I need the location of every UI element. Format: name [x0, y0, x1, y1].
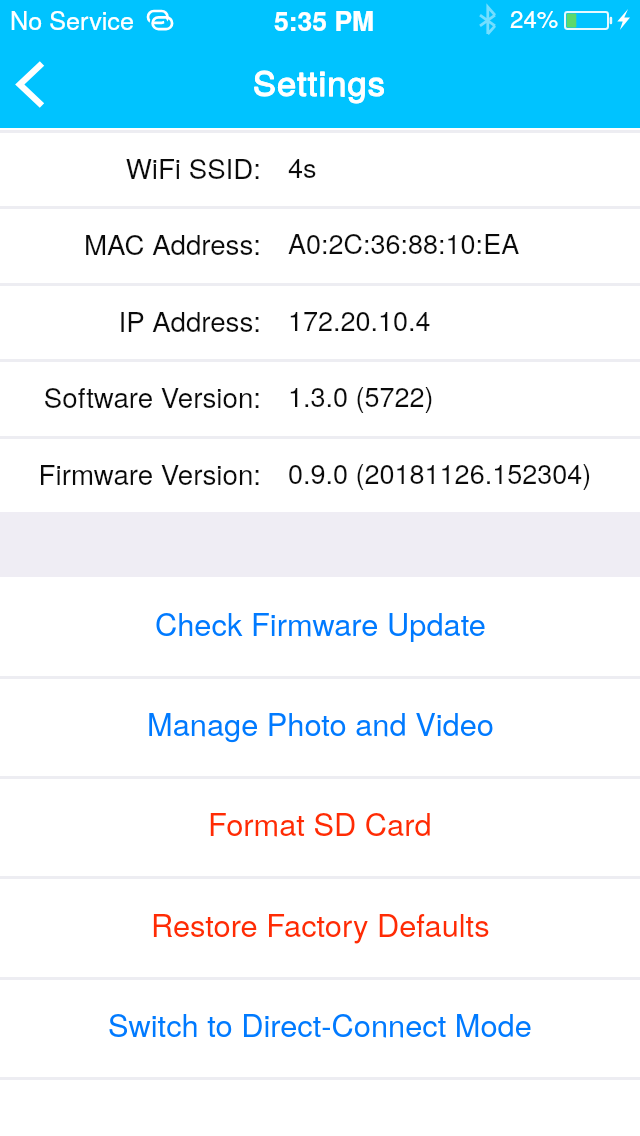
staticText: 0.9.0 (20181126.152304): [288, 453, 592, 492]
staticText: Switch to Direct-Connect Mode: [108, 1002, 532, 1046]
staticText: 4s: [288, 147, 317, 186]
staticText: Restore Factory Defaults: [151, 902, 490, 946]
staticText: MAC Address:: [84, 223, 261, 263]
button[interactable]: Back: [0, 40, 70, 128]
staticText: Software Version:: [43, 376, 261, 416]
button[interactable]: Format SD Card: [0, 777, 640, 877]
staticText: Firmware Version:: [38, 453, 261, 493]
staticText: Settings: [253, 56, 387, 105]
staticText: 5:35 PM: [274, 1, 375, 39]
staticText: 24%: [510, 0, 559, 35]
staticText: IP Address:: [118, 300, 261, 340]
staticText: Manage Photo and Video: [147, 701, 494, 745]
button[interactable]: IP Address:: [0, 283, 640, 360]
staticText: No Service: [10, 1, 134, 37]
staticText: 172.20.10.4: [288, 300, 431, 339]
button[interactable]: Manage Photo and Video: [0, 677, 640, 777]
staticText: A0:2C:36:88:10:EA: [288, 223, 520, 262]
button[interactable]: Check Firmware Update: [0, 577, 640, 677]
button[interactable]: Switch to Direct-Connect Mode: [0, 978, 640, 1078]
staticText: Settings: [253, 56, 387, 105]
staticText: Format SD Card: [208, 801, 432, 845]
staticText: WiFi SSID:: [125, 147, 261, 187]
button[interactable]: Software Version:: [0, 359, 640, 436]
staticText: Check Firmware Update: [155, 601, 486, 645]
staticText: 1.3.0 (5722): [288, 376, 434, 415]
button[interactable]: Restore Factory Defaults: [0, 878, 640, 978]
button[interactable]: Firmware Version:: [0, 436, 640, 513]
button[interactable]: MAC Address:: [0, 206, 640, 283]
button[interactable]: WiFi SSID:: [0, 130, 640, 207]
